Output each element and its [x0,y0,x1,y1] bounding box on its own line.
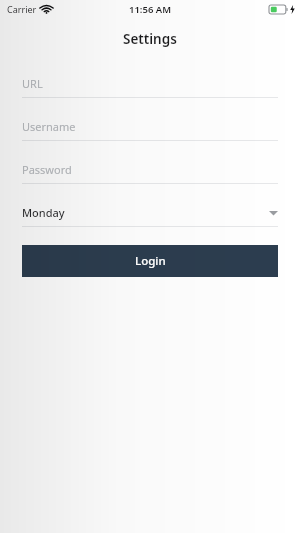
button[interactable]: Password [22,160,278,184]
other: Battery [269,5,289,14]
staticText: Settings [123,30,177,48]
staticText: 11:56 AM [129,3,172,16]
staticText: URL [22,76,43,91]
button[interactable]: Monday [22,203,278,227]
button[interactable]: Login [22,245,278,277]
other: Wi-Fi [41,5,52,14]
staticText: Login [135,253,166,269]
button[interactable]: URL [22,74,278,98]
staticText: Monday [22,205,65,220]
staticText: Carrier [7,3,37,15]
staticText: Password [22,162,72,177]
button[interactable]: Username [22,117,278,141]
staticText: Username [22,119,76,134]
